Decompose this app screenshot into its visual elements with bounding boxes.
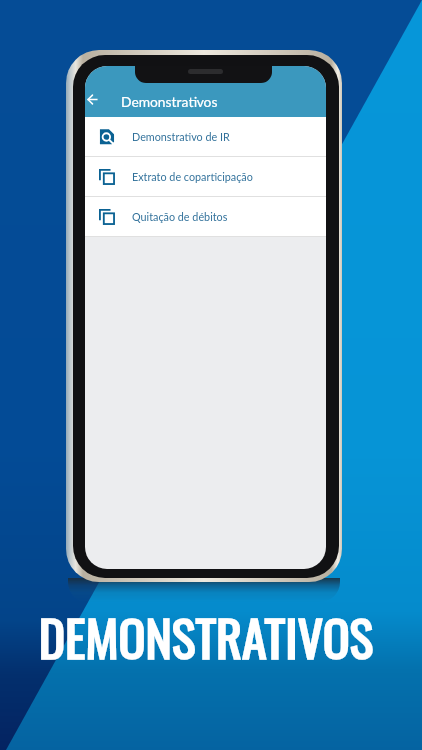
staticText: Quitação de débitos bbox=[132, 210, 228, 223]
staticText: DEMONSTRATIVOS bbox=[0, 599, 417, 673]
staticText: Extrato de coparticipação bbox=[132, 170, 253, 183]
button[interactable]: Demonstrativo de IR bbox=[85, 117, 326, 156]
button[interactable]: Back bbox=[85, 86, 100, 112]
staticText: Demonstrativo de IR bbox=[132, 130, 230, 143]
button[interactable]: Extrato de coparticipação bbox=[85, 157, 326, 196]
staticText: Demonstrativos bbox=[121, 93, 218, 110]
button[interactable]: Quitação de débitos bbox=[85, 197, 326, 236]
